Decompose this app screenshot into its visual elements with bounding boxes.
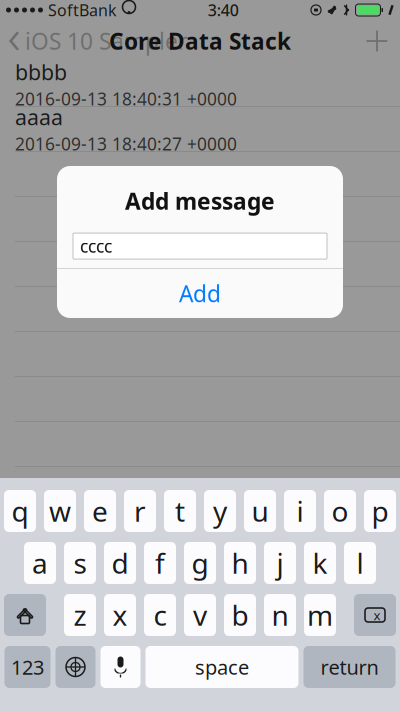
staticText: i xyxy=(296,492,303,530)
staticText: y xyxy=(213,492,227,530)
button[interactable]: Shift xyxy=(4,594,46,636)
button[interactable]: Dictation xyxy=(100,646,140,688)
button[interactable]: p xyxy=(364,490,396,532)
staticText: d xyxy=(111,544,128,582)
button[interactable]: e xyxy=(84,490,116,532)
staticText: p xyxy=(371,492,388,530)
button[interactable]: iOS 10 Sampler xyxy=(0,20,187,62)
button[interactable]: return xyxy=(303,646,395,688)
staticText: j xyxy=(276,544,283,582)
button[interactable]: x xyxy=(104,594,136,636)
button[interactable]: y xyxy=(204,490,236,532)
button[interactable]: r xyxy=(124,490,156,532)
staticText: e xyxy=(92,492,108,530)
staticText: n xyxy=(271,596,288,634)
button[interactable]: l xyxy=(344,542,376,584)
staticText: u xyxy=(251,492,268,530)
staticText: a xyxy=(32,544,48,582)
staticText: return xyxy=(320,654,378,680)
button[interactable]: Delete xyxy=(354,594,396,636)
staticText: bbbb xyxy=(15,58,67,86)
staticText: Add xyxy=(179,278,221,308)
button[interactable]: g xyxy=(184,542,216,584)
staticText: o xyxy=(331,492,348,530)
button[interactable]: Next keyboard xyxy=(55,646,95,688)
staticText: g xyxy=(191,544,208,582)
staticText: Core Data Stack xyxy=(109,26,291,56)
staticText: x xyxy=(373,606,380,624)
button[interactable]: aaaa xyxy=(0,107,400,152)
staticText: 123 xyxy=(11,654,44,680)
button[interactable]: bbbb xyxy=(0,62,400,107)
staticText: c xyxy=(153,596,166,634)
button[interactable]: s xyxy=(64,542,96,584)
button[interactable]: v xyxy=(184,594,216,636)
button[interactable]: q xyxy=(4,490,36,532)
button[interactable]: d xyxy=(104,542,136,584)
button[interactable]: Add xyxy=(354,22,400,60)
staticText: f xyxy=(155,544,165,582)
staticText: 2016-09-13 18:40:31 +0000 xyxy=(15,87,237,110)
button[interactable]: c xyxy=(144,594,176,636)
staticText: t xyxy=(175,492,185,530)
staticText: aaaa xyxy=(15,103,63,131)
staticText: s xyxy=(73,544,86,582)
button[interactable]: 123 xyxy=(4,646,50,688)
staticText: iOS 10 Sampler xyxy=(25,26,187,56)
button[interactable]: o xyxy=(324,490,356,532)
staticText: r xyxy=(134,492,146,530)
button[interactable]: f xyxy=(144,542,176,584)
staticText: Add message xyxy=(125,186,275,216)
button[interactable]: Add xyxy=(57,269,343,318)
button[interactable]: t xyxy=(164,490,196,532)
staticText: x xyxy=(112,596,127,634)
staticText: 3:40 xyxy=(208,0,239,21)
button[interactable]: i xyxy=(284,490,316,532)
button[interactable]: m xyxy=(304,594,336,636)
staticText: k xyxy=(312,544,327,582)
staticText: SoftBank xyxy=(48,0,117,21)
button[interactable]: u xyxy=(244,490,276,532)
staticText: v xyxy=(193,596,207,634)
staticText: q xyxy=(11,492,28,530)
staticText: b xyxy=(231,596,248,634)
staticText: m xyxy=(307,596,333,634)
button[interactable]: a xyxy=(24,542,56,584)
staticText: cccc xyxy=(80,235,112,258)
button[interactable]: z xyxy=(64,594,96,636)
button[interactable]: h xyxy=(224,542,256,584)
staticText: space xyxy=(195,654,249,680)
staticText: w xyxy=(49,492,71,530)
staticText: 2016-09-13 18:40:27 +0000 xyxy=(15,132,237,155)
staticText: l xyxy=(356,544,363,582)
button[interactable]: n xyxy=(264,594,296,636)
button[interactable]: k xyxy=(304,542,336,584)
button[interactable]: b xyxy=(224,594,256,636)
button[interactable]: j xyxy=(264,542,296,584)
staticText: h xyxy=(231,544,248,582)
button[interactable]: space xyxy=(145,646,298,688)
button[interactable]: w xyxy=(44,490,76,532)
staticText: z xyxy=(73,596,86,634)
